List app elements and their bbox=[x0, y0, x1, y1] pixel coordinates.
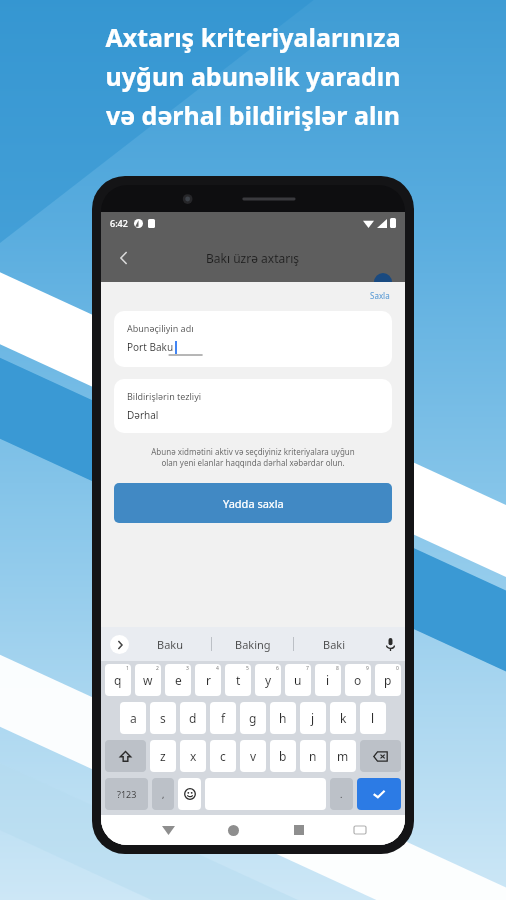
staticText: 5 bbox=[246, 665, 249, 672]
staticText: n bbox=[309, 748, 317, 764]
staticText: x bbox=[190, 748, 197, 764]
staticText: 1 bbox=[126, 665, 129, 672]
staticText: 8 bbox=[336, 665, 339, 672]
staticText: i bbox=[326, 672, 330, 688]
staticText: Bakı üzrə axtarış bbox=[206, 250, 300, 266]
button[interactable]: Back bbox=[107, 241, 141, 275]
button[interactable]: More suggestions bbox=[110, 635, 129, 654]
staticText: 9 bbox=[366, 665, 369, 672]
staticText: 6 bbox=[276, 665, 279, 672]
staticText: , bbox=[162, 788, 165, 800]
button[interactable]: Baking bbox=[212, 627, 293, 661]
button[interactable]: k bbox=[330, 702, 356, 734]
button[interactable]: Backspace bbox=[360, 740, 401, 772]
staticText: p bbox=[384, 672, 392, 688]
staticText: j bbox=[311, 710, 315, 726]
button[interactable]: Switch keyboard bbox=[331, 815, 389, 845]
staticText: Port Baku bbox=[127, 340, 174, 354]
staticText: 2 bbox=[156, 665, 159, 672]
staticText: u bbox=[294, 672, 302, 688]
staticText: y bbox=[265, 672, 272, 688]
staticText: . bbox=[340, 788, 343, 800]
staticText: t bbox=[236, 672, 241, 688]
button[interactable]: l bbox=[360, 702, 386, 734]
button[interactable]: w bbox=[135, 664, 161, 696]
staticText: f bbox=[221, 710, 226, 726]
staticText: q bbox=[114, 672, 122, 688]
staticText: 0 bbox=[396, 665, 399, 672]
staticText: ?123 bbox=[117, 788, 137, 800]
staticText: z bbox=[160, 748, 166, 764]
staticText: a bbox=[130, 710, 137, 726]
staticText: e bbox=[175, 672, 182, 688]
staticText: s bbox=[160, 710, 166, 726]
staticText: Saxla bbox=[370, 290, 390, 301]
button[interactable]: Emoji bbox=[178, 778, 201, 810]
staticText: k bbox=[340, 710, 347, 726]
button[interactable]: o bbox=[345, 664, 371, 696]
button[interactable]: Comma bbox=[152, 778, 174, 810]
staticText: 3 bbox=[186, 665, 189, 672]
button[interactable]: s bbox=[150, 702, 176, 734]
staticText: b bbox=[279, 748, 287, 764]
button[interactable]: f bbox=[210, 702, 236, 734]
button[interactable]: a bbox=[120, 702, 146, 734]
button[interactable]: q bbox=[105, 664, 131, 696]
button[interactable]: b bbox=[270, 740, 296, 772]
button[interactable]: j bbox=[300, 702, 326, 734]
button[interactable]: Recents bbox=[266, 815, 331, 845]
button[interactable]: m bbox=[330, 740, 356, 772]
staticText: o bbox=[354, 672, 362, 688]
button[interactable]: Symbols bbox=[105, 778, 148, 810]
button[interactable]: r bbox=[195, 664, 221, 696]
button[interactable]: d bbox=[180, 702, 206, 734]
staticText: Baki bbox=[323, 637, 346, 652]
staticText: h bbox=[279, 710, 287, 726]
button[interactable]: Home bbox=[201, 815, 266, 845]
button[interactable]: Hide keyboard bbox=[136, 815, 201, 845]
staticText: Axtarış kriteriyalarınıza uyğun abunəlik… bbox=[105, 20, 401, 132]
staticText: d bbox=[189, 710, 197, 726]
button[interactable]: i bbox=[315, 664, 341, 696]
staticText: v bbox=[250, 748, 257, 764]
button[interactable]: t bbox=[225, 664, 251, 696]
staticText: 7 bbox=[306, 665, 309, 672]
button[interactable]: x bbox=[180, 740, 206, 772]
button[interactable]: Saxla bbox=[368, 288, 392, 303]
staticText: 4 bbox=[216, 665, 219, 672]
button[interactable]: p bbox=[375, 664, 401, 696]
button[interactable]: n bbox=[300, 740, 326, 772]
staticText: r bbox=[206, 672, 211, 688]
button[interactable]: Bildirişlərin tezliyi bbox=[114, 379, 392, 433]
button[interactable]: h bbox=[270, 702, 296, 734]
button[interactable]: y bbox=[255, 664, 281, 696]
button[interactable]: Yadda saxla bbox=[114, 483, 392, 523]
button[interactable]: Enter bbox=[357, 778, 401, 810]
button[interactable]: Baki bbox=[294, 627, 375, 661]
button[interactable]: Voice input bbox=[375, 627, 405, 661]
button[interactable]: z bbox=[150, 740, 176, 772]
staticText: Bildirişlərin tezliyi bbox=[127, 390, 202, 402]
staticText: Abunəçiliyin adı bbox=[127, 322, 194, 334]
staticText: Yadda saxla bbox=[223, 496, 284, 511]
button[interactable]: c bbox=[210, 740, 236, 772]
button[interactable]: Shift bbox=[105, 740, 146, 772]
staticText: Baku bbox=[157, 637, 183, 652]
staticText: m bbox=[337, 748, 349, 764]
staticText: g bbox=[249, 710, 257, 726]
staticText: Dərhal bbox=[127, 408, 159, 422]
staticText: l bbox=[371, 710, 375, 726]
button[interactable]: u bbox=[285, 664, 311, 696]
staticText: Abunə xidmətini aktiv və seçdiyiniz krit… bbox=[117, 446, 389, 469]
button[interactable]: Period bbox=[330, 778, 353, 810]
button[interactable]: Abunəçiliyin adı bbox=[114, 311, 392, 367]
button[interactable]: e bbox=[165, 664, 191, 696]
staticText: w bbox=[143, 672, 153, 688]
staticText: 6:42 bbox=[110, 217, 128, 229]
staticText: c bbox=[220, 748, 226, 764]
staticText: Baking bbox=[235, 637, 271, 652]
button[interactable]: g bbox=[240, 702, 266, 734]
button[interactable]: v bbox=[240, 740, 266, 772]
button[interactable]: Baku bbox=[129, 627, 211, 661]
